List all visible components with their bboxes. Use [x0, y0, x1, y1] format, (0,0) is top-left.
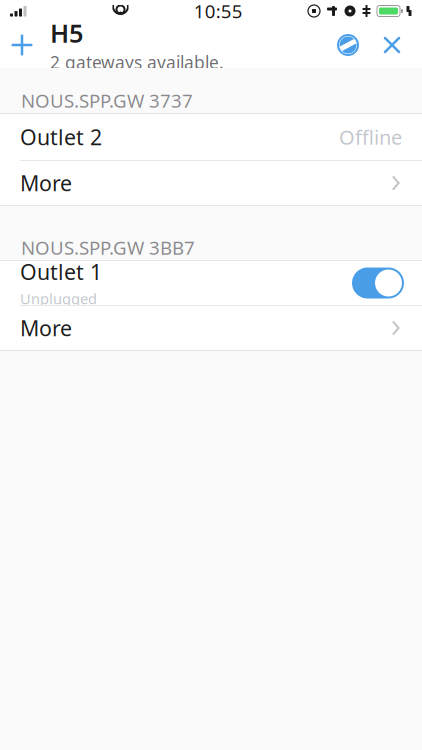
staticText: More	[20, 169, 72, 197]
staticText: NOUS.SPP.GW 3737	[21, 88, 193, 113]
button[interactable]: Outlet 1	[0, 261, 422, 305]
button[interactable]: Network	[326, 22, 370, 68]
staticText: NOUS.SPP.GW 3BB7	[21, 235, 195, 260]
staticText: Unplugged	[20, 289, 97, 308]
staticText: Outlet 1	[20, 258, 102, 286]
staticText: 2 gateways available.	[50, 51, 224, 74]
staticText: 10:55	[194, 0, 243, 23]
button[interactable]: Add	[0, 22, 44, 68]
button[interactable]: Outlet 2	[0, 114, 422, 160]
staticText: Offline	[339, 124, 402, 150]
button[interactable]: More	[0, 161, 422, 205]
button[interactable]: Close	[370, 22, 414, 68]
staticText: More	[20, 314, 72, 342]
button[interactable]: More	[0, 306, 422, 350]
staticText: H5	[50, 16, 83, 50]
staticText: Outlet 2	[20, 123, 102, 151]
